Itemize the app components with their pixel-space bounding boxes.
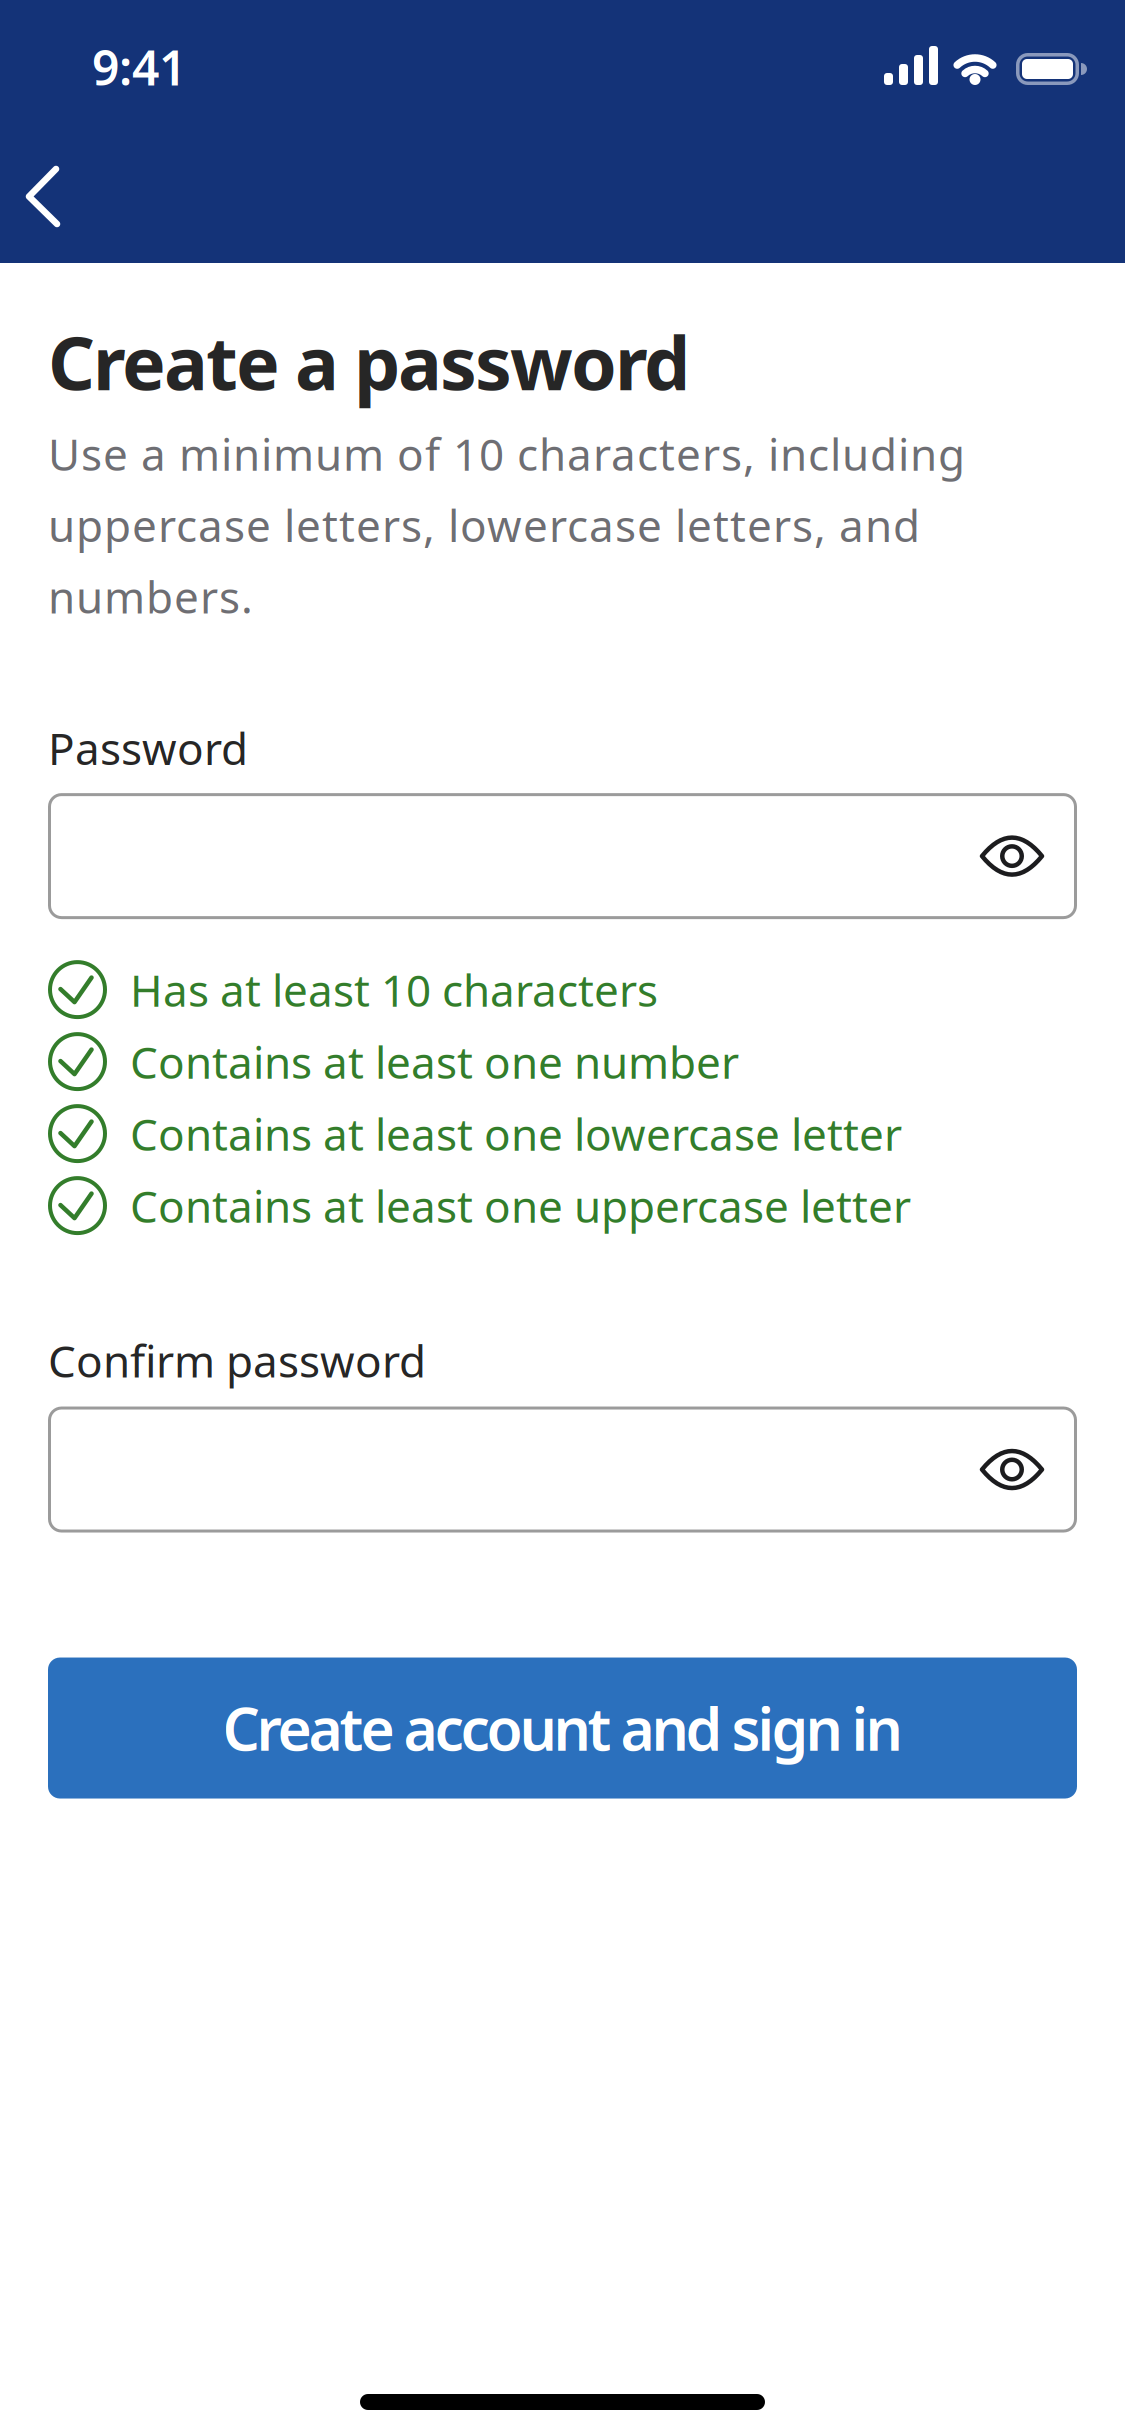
staticText: Has at least 10 characters — [130, 960, 658, 1019]
staticText: Contains at least one number — [130, 1032, 739, 1091]
staticText: Create account and sign in — [222, 1689, 902, 1767]
button[interactable]: Show password — [981, 836, 1077, 876]
staticText: Confirm password — [48, 1331, 426, 1389]
staticText: Use a minimum of 10 characters, includin… — [48, 424, 965, 626]
button[interactable]: Back — [26, 166, 60, 227]
button[interactable]: Show password — [981, 1449, 1077, 1489]
staticText: Contains at least one lowercase letter — [130, 1104, 902, 1163]
staticText: Password — [48, 719, 248, 777]
staticText: Contains at least one uppercase letter — [130, 1176, 911, 1235]
staticText: 9:41 — [92, 35, 186, 99]
staticText: Create a password — [48, 313, 690, 410]
button[interactable]: Create account and sign in — [48, 1657, 1077, 1798]
